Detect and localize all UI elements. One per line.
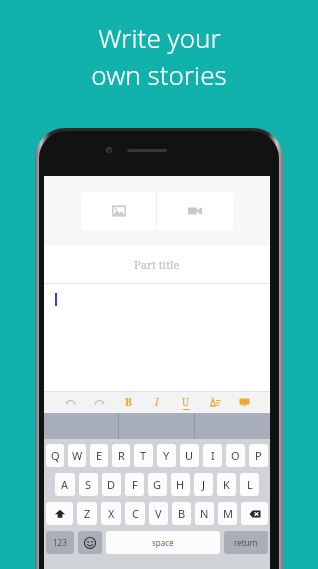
- button[interactable]: U: [180, 444, 199, 467]
- staticText: 123: [53, 537, 67, 548]
- button[interactable]: A: [55, 473, 75, 496]
- button[interactable]: I: [203, 444, 222, 467]
- staticText: E: [96, 448, 103, 463]
- button[interactable]: 123: [46, 531, 74, 554]
- staticText: Z: [84, 506, 91, 521]
- button[interactable]: D: [102, 473, 121, 496]
- button[interactable]: M: [218, 502, 237, 525]
- staticText: U: [185, 448, 194, 463]
- button[interactable]: B: [119, 392, 137, 412]
- staticText: Write your: [98, 20, 221, 55]
- staticText: I: [211, 448, 215, 463]
- staticText: O: [231, 448, 240, 463]
- staticText: I: [155, 395, 159, 409]
- button[interactable]: Emoji: [78, 531, 102, 554]
- staticText: Part title: [134, 257, 180, 272]
- staticText: Q: [51, 448, 60, 463]
- staticText: T: [140, 448, 147, 463]
- button[interactable]: J: [194, 473, 213, 496]
- button[interactable]: Add video: [157, 192, 233, 230]
- button[interactable]: Undo: [61, 392, 79, 412]
- button[interactable]: K: [217, 473, 236, 496]
- staticText: C: [132, 506, 139, 521]
- staticText: H: [176, 477, 185, 492]
- button[interactable]: Shift: [46, 502, 73, 525]
- staticText: R: [118, 448, 125, 463]
- staticText: K: [223, 477, 230, 492]
- staticText: Y: [163, 448, 170, 463]
- button[interactable]: X: [101, 502, 121, 525]
- button[interactable]: O: [226, 444, 245, 467]
- staticText: G: [153, 477, 162, 492]
- button[interactable]: Add image: [81, 192, 156, 230]
- staticText: V: [155, 506, 162, 521]
- button[interactable]: Z: [77, 502, 97, 525]
- staticText: B: [178, 506, 186, 521]
- staticText: B: [125, 395, 132, 409]
- staticText: space: [152, 537, 174, 548]
- button[interactable]: space: [106, 531, 220, 554]
- staticText: own stories: [91, 57, 227, 92]
- staticText: D: [107, 477, 116, 492]
- button[interactable]: Redo: [90, 392, 108, 412]
- button[interactable]: S: [79, 473, 98, 496]
- button[interactable]: L: [240, 473, 259, 496]
- button[interactable]: B: [172, 502, 191, 525]
- button[interactable]: Y: [157, 444, 176, 467]
- button[interactable]: W: [68, 444, 86, 467]
- button[interactable]: T: [134, 444, 153, 467]
- button[interactable]: V: [149, 502, 168, 525]
- button[interactable]: Text align: [206, 392, 224, 412]
- button[interactable]: Comment: [235, 392, 253, 412]
- button[interactable]: Backspace: [241, 502, 268, 525]
- staticText: A: [61, 477, 69, 492]
- staticText: N: [200, 506, 209, 521]
- button[interactable]: P: [249, 444, 268, 467]
- staticText: X: [108, 506, 115, 521]
- staticText: F: [132, 477, 138, 492]
- button[interactable]: C: [125, 502, 145, 525]
- staticText: return: [234, 537, 258, 548]
- staticText: S: [85, 477, 92, 492]
- staticText: W: [72, 448, 83, 463]
- button[interactable]: U: [177, 392, 195, 412]
- button[interactable]: F: [125, 473, 144, 496]
- button[interactable]: I: [148, 392, 166, 412]
- staticText: L: [247, 477, 253, 492]
- staticText: J: [202, 477, 206, 492]
- button[interactable]: H: [171, 473, 190, 496]
- staticText: U: [182, 395, 190, 409]
- button[interactable]: Q: [46, 444, 64, 467]
- button[interactable]: E: [90, 444, 108, 467]
- staticText: P: [255, 448, 262, 463]
- staticText: M: [223, 506, 233, 521]
- button[interactable]: G: [148, 473, 167, 496]
- button[interactable]: N: [195, 502, 214, 525]
- button[interactable]: R: [112, 444, 130, 467]
- button[interactable]: return: [224, 531, 268, 554]
